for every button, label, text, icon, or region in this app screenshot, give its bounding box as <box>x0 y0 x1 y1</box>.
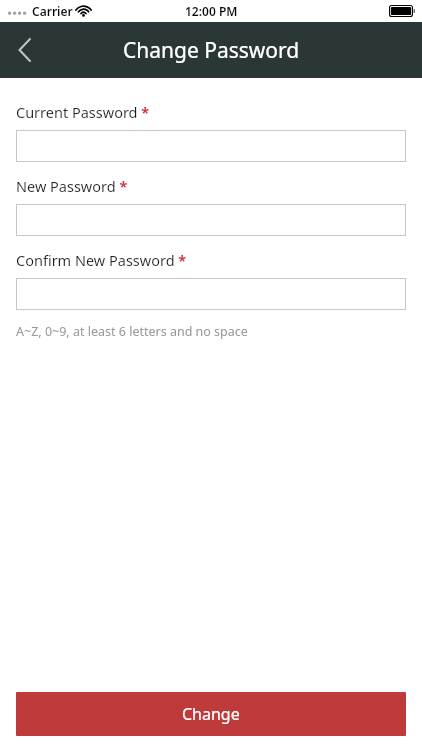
staticText: Current Password * <box>16 102 150 122</box>
staticText: New Password * <box>16 176 128 196</box>
button[interactable] <box>16 278 406 310</box>
staticText: Change <box>182 703 240 725</box>
button[interactable]: Back <box>0 26 48 74</box>
staticText: Carrier <box>32 3 73 19</box>
staticText: A~Z, 0~9, at least 6 letters and no spac… <box>16 323 248 340</box>
button[interactable] <box>16 130 406 162</box>
staticText: 12:00 PM <box>185 3 238 19</box>
button[interactable]: Change <box>16 692 406 736</box>
staticText: Confirm New Password * <box>16 250 187 270</box>
button[interactable] <box>16 204 406 236</box>
staticText: Change Password <box>123 36 300 65</box>
